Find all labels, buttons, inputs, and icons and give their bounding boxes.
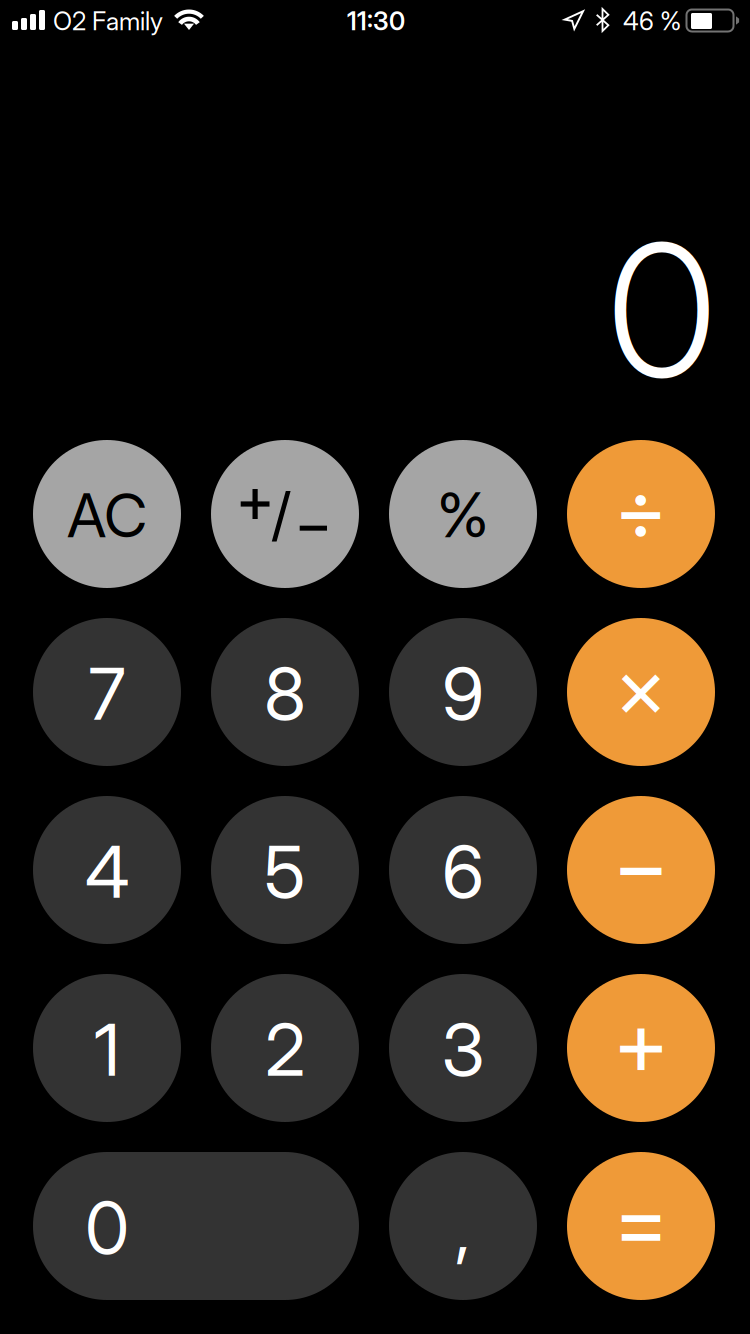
button[interactable]: Multiply bbox=[567, 618, 715, 766]
button[interactable]: 4 bbox=[33, 796, 181, 944]
button[interactable]: 9 bbox=[389, 618, 537, 766]
staticText: 2 bbox=[265, 1006, 305, 1093]
staticText: 8 bbox=[264, 650, 306, 737]
button[interactable]: 1 bbox=[33, 974, 181, 1122]
button[interactable]: 7 bbox=[33, 618, 181, 766]
staticText: 6 bbox=[442, 828, 484, 915]
staticText: ÷ bbox=[614, 457, 668, 561]
button[interactable]: Equals bbox=[567, 1152, 715, 1300]
button[interactable]: Change sign bbox=[211, 440, 359, 588]
staticText: 11:30 bbox=[347, 6, 405, 36]
staticText: + bbox=[613, 988, 669, 1096]
button[interactable]: 2 bbox=[211, 974, 359, 1122]
staticText: AC bbox=[67, 479, 147, 552]
button[interactable]: Percent bbox=[389, 440, 537, 588]
button[interactable]: Subtract bbox=[567, 796, 715, 944]
staticText: − bbox=[612, 809, 669, 919]
staticText: 0 bbox=[607, 199, 716, 420]
button[interactable]: 8 bbox=[211, 618, 359, 766]
button[interactable]: 6 bbox=[389, 796, 537, 944]
staticText: 1 bbox=[94, 1006, 120, 1093]
button[interactable]: Clear bbox=[33, 440, 181, 588]
staticText: 7 bbox=[88, 650, 125, 737]
staticText: × bbox=[614, 636, 667, 738]
staticText: 4 bbox=[85, 828, 129, 915]
button[interactable]: 5 bbox=[211, 796, 359, 944]
staticText: 3 bbox=[441, 1006, 484, 1093]
button[interactable]: Divide bbox=[567, 440, 715, 588]
staticText: 9 bbox=[442, 650, 484, 737]
button[interactable]: Decimal separator bbox=[389, 1152, 537, 1300]
staticText: % bbox=[437, 478, 489, 552]
button[interactable]: 3 bbox=[389, 974, 537, 1122]
button[interactable]: Add bbox=[567, 974, 715, 1122]
staticText: 5 bbox=[264, 828, 306, 915]
staticText: = bbox=[613, 1168, 668, 1274]
button[interactable]: 0 bbox=[33, 1152, 359, 1300]
staticText: , bbox=[455, 1184, 471, 1271]
staticText: O2 Family bbox=[53, 6, 163, 36]
staticText: 46 % bbox=[623, 6, 681, 36]
staticText: 0 bbox=[85, 1184, 129, 1271]
